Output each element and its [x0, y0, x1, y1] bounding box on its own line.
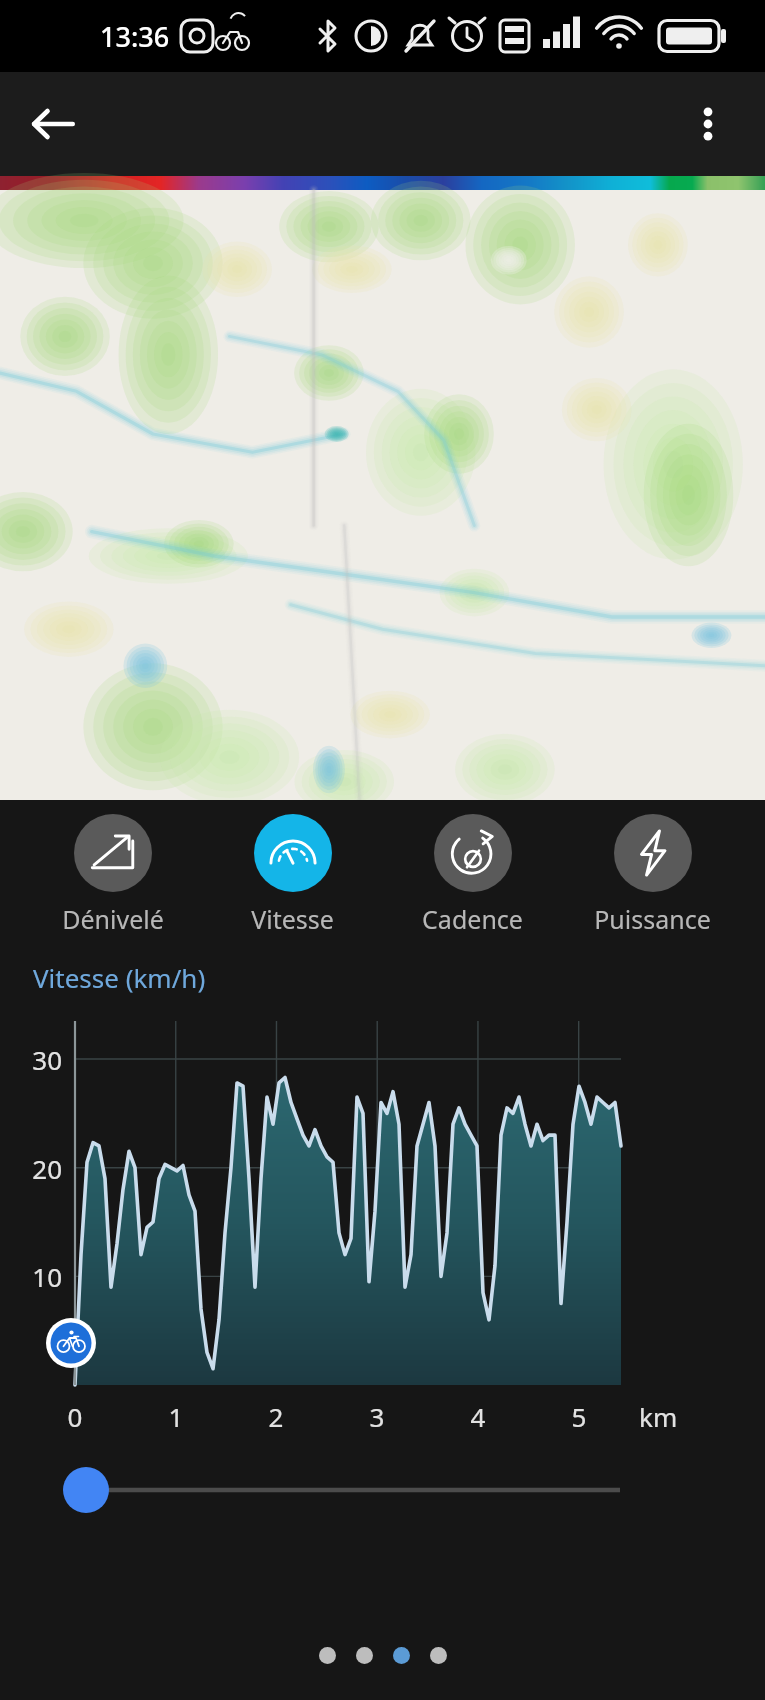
staticText: 0: [55, 1399, 95, 1434]
button[interactable]: Vitesse: [215, 814, 370, 936]
staticText: km: [639, 1399, 678, 1434]
staticText: Puissance: [594, 902, 711, 936]
button[interactable]: [356, 1647, 373, 1664]
staticText: Dénivelé: [62, 902, 164, 936]
button[interactable]: [319, 1647, 336, 1664]
staticText: 3: [357, 1399, 397, 1434]
button[interactable]: Cadence: [395, 814, 550, 936]
button[interactable]: More options: [673, 89, 743, 159]
button[interactable]: [393, 1647, 410, 1664]
staticText: Vitesse (km/h): [33, 960, 206, 995]
staticText: 4: [458, 1399, 498, 1434]
staticText: 20: [22, 1151, 62, 1186]
button[interactable]: Dénivelé: [35, 814, 190, 936]
staticText: 5: [559, 1399, 599, 1434]
staticText: Cadence: [422, 902, 523, 936]
staticText: Vitesse: [251, 902, 334, 936]
button[interactable]: [430, 1647, 447, 1664]
button[interactable]: Puissance: [575, 814, 730, 936]
staticText: 13:36: [100, 18, 170, 55]
staticText: 10: [22, 1259, 62, 1294]
button[interactable]: [0, 1461, 765, 1519]
staticText: 2: [256, 1399, 296, 1434]
staticText: 30: [22, 1042, 62, 1077]
staticText: 1: [156, 1399, 196, 1434]
button[interactable]: Back: [18, 89, 88, 159]
